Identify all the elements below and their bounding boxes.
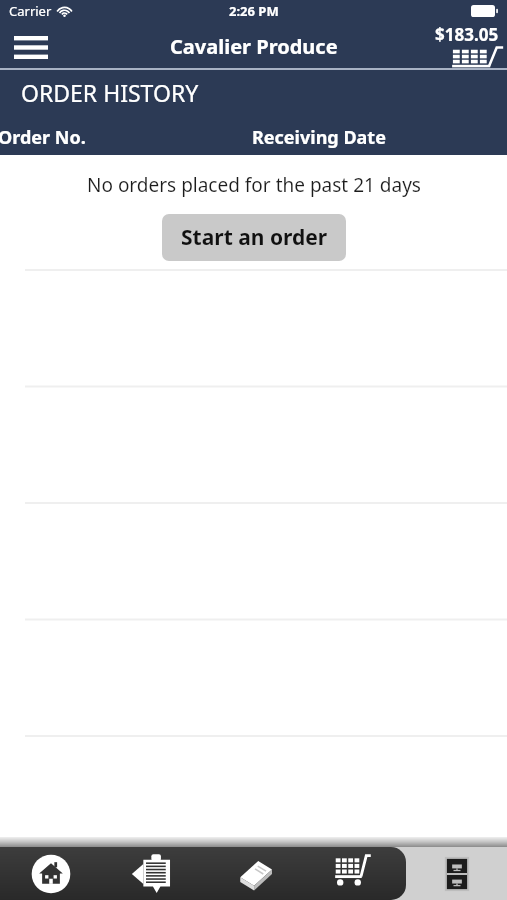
staticText: Start an order <box>181 223 328 252</box>
button[interactable]: Cart <box>305 847 406 900</box>
button[interactable]: Home <box>0 847 102 900</box>
button[interactable]: Start an order <box>162 214 346 261</box>
button[interactable]: Menu <box>0 22 60 70</box>
staticText: Carrier <box>9 2 52 20</box>
staticText: Receiving Date <box>252 125 386 150</box>
staticText: No orders placed for the past 21 days <box>87 172 421 198</box>
staticText: 2:26 PM <box>229 2 279 20</box>
staticText: ORDER HISTORY <box>21 77 199 108</box>
staticText: Order No. <box>0 125 86 150</box>
button[interactable]: Cart, $183.05 <box>423 22 507 70</box>
button[interactable]: Orders <box>102 847 204 900</box>
button[interactable]: Catalog <box>204 847 305 900</box>
button[interactable]: Order History <box>406 847 507 900</box>
staticText: Cavalier Produce <box>170 33 338 60</box>
staticText: $183.05 <box>435 23 499 46</box>
